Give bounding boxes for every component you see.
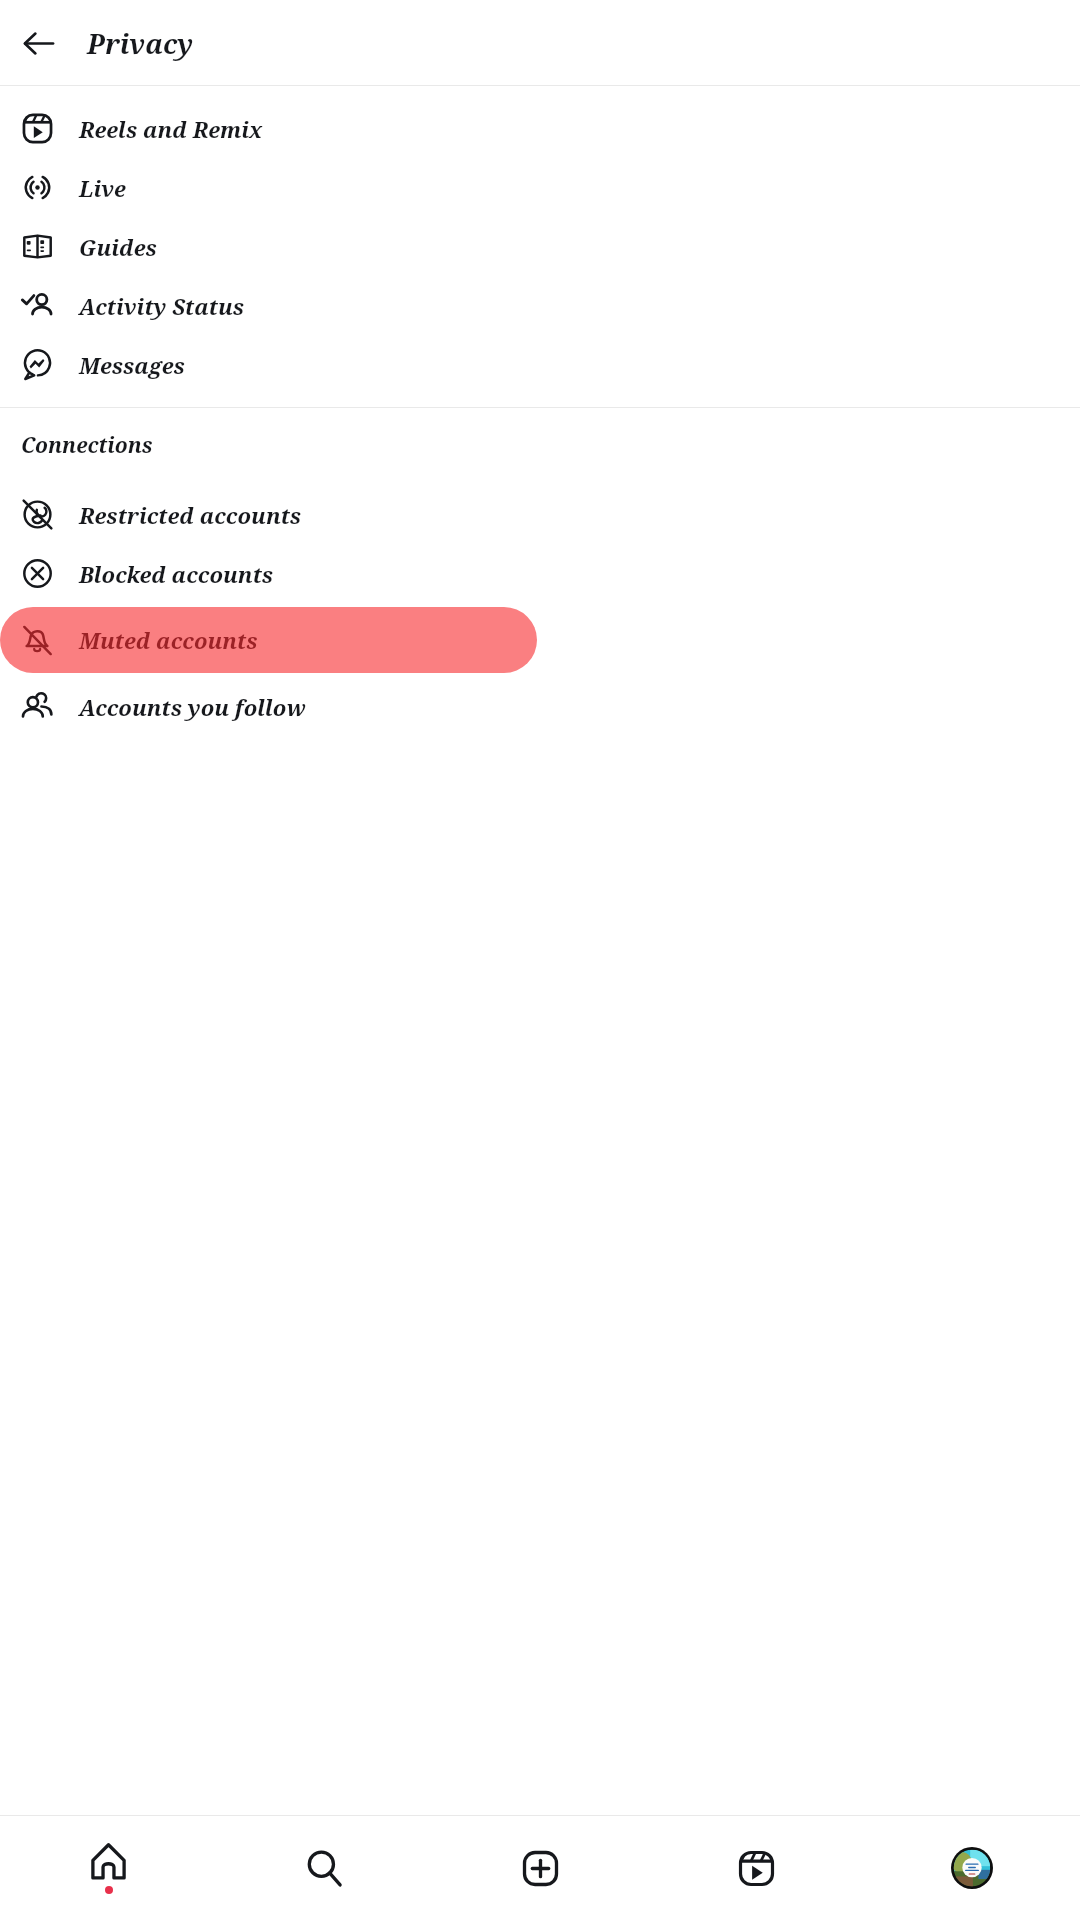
button[interactable]: Live: [0, 158, 1080, 217]
staticText: Privacy: [87, 25, 194, 62]
staticText: Reels and Remix: [79, 114, 263, 144]
button[interactable]: Restricted accounts: [0, 485, 1080, 544]
button[interactable]: Messages: [0, 335, 1080, 394]
button[interactable]: Reels: [648, 1816, 864, 1920]
button[interactable]: Back: [10, 15, 66, 71]
button[interactable]: Reels and Remix: [0, 99, 1080, 158]
button[interactable]: Home: [0, 1816, 216, 1920]
button[interactable]: Search: [216, 1816, 432, 1920]
staticText: Muted accounts: [79, 625, 258, 655]
staticText: Live: [79, 173, 126, 203]
staticText: Restricted accounts: [79, 500, 302, 530]
staticText: Accounts you follow: [79, 692, 306, 722]
button[interactable]: Muted accounts: [0, 607, 537, 673]
button[interactable]: Guides: [0, 217, 1080, 276]
staticText: Messages: [79, 350, 185, 380]
staticText: Guides: [79, 232, 157, 262]
button[interactable]: Accounts you follow: [0, 677, 1080, 736]
button[interactable]: Blocked accounts: [0, 544, 1080, 603]
button[interactable]: Activity Status: [0, 276, 1080, 335]
button[interactable]: Create: [432, 1816, 648, 1920]
button[interactable]: Profile: [864, 1816, 1080, 1920]
staticText: Connections: [21, 431, 153, 460]
staticText: Activity Status: [79, 291, 245, 321]
staticText: Blocked accounts: [79, 559, 274, 589]
